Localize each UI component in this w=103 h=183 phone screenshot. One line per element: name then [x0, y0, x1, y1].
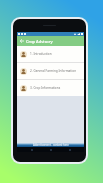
button[interactable]: Advertisement - content here	[17, 143, 84, 147]
staticText: 1. Introduction	[30, 52, 52, 56]
staticText: 3. Crop Informations	[30, 86, 61, 90]
button[interactable]: 2. General Farming Information	[17, 63, 84, 79]
staticText: Advertisement - content here	[33, 143, 69, 147]
button[interactable]: Recents	[65, 147, 74, 152]
button[interactable]: Back	[19, 38, 25, 44]
button[interactable]: 3. Crop Informations	[17, 80, 84, 96]
staticText: 2. General Farming Information	[30, 69, 77, 73]
staticText: Crop Advisory	[26, 39, 53, 44]
button[interactable]: 1. Introduction	[17, 46, 84, 62]
button[interactable]: Home	[46, 147, 55, 152]
button[interactable]: Back	[27, 147, 36, 152]
